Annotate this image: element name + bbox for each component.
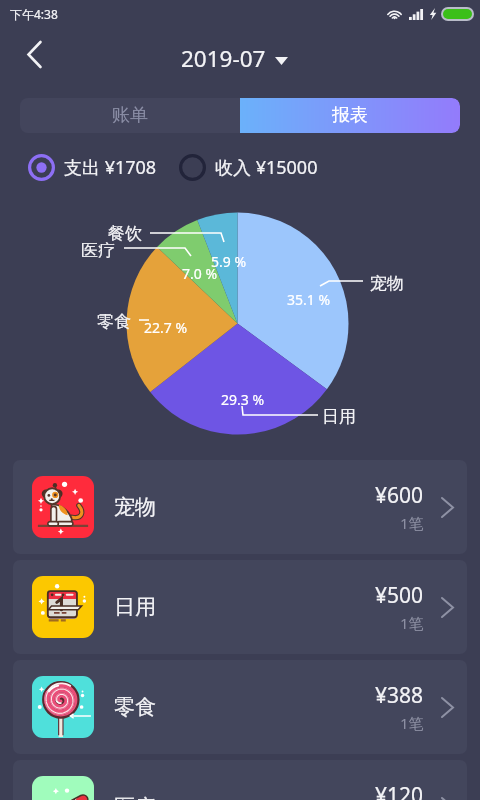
button[interactable]: 宠物 [13,460,467,554]
staticText: 支出 ¥1708 [64,155,157,180]
staticText: ¥600 [375,481,424,510]
button[interactable]: 支出 ¥1708 [28,154,157,181]
staticText: 29.3 % [221,390,265,409]
staticText: 医疗 [81,240,115,261]
staticText: 22.7 % [144,318,188,337]
button[interactable]: Back [10,30,58,78]
staticText: 2019-07 [181,43,266,74]
staticText: 7.0 % [182,264,218,283]
staticText: 1笔 [400,613,424,633]
staticText: 宠物 [114,494,156,520]
staticText: 宠物 [370,273,404,294]
staticText: 1笔 [400,713,424,733]
button[interactable]: 报表 [240,98,460,133]
staticText: 下午4:38 [10,6,58,22]
staticText: 日用 [114,594,156,620]
staticText: 零食 [97,311,131,332]
staticText: 零食 [114,694,156,720]
staticText: 账单 [112,104,148,127]
staticText: 5.9 % [211,252,247,271]
staticText: 报表 [332,104,368,127]
button[interactable]: 账单 [20,98,240,133]
staticText: ¥388 [375,681,424,710]
staticText: 35.1 % [287,290,331,309]
button[interactable]: 2019-07 [181,43,288,74]
staticText: 医疗 [114,794,156,800]
staticText: ¥120 [375,781,424,800]
staticText: 餐饮 [108,223,142,244]
button[interactable]: 医疗 [13,760,467,800]
staticText: 日用 [322,406,356,427]
staticText: ¥500 [375,581,424,610]
staticText: 收入 ¥15000 [215,155,318,180]
button[interactable]: 收入 ¥15000 [179,154,318,181]
button[interactable]: 日用 [13,560,467,654]
button[interactable]: 零食 [13,660,467,754]
staticText: 1笔 [400,513,424,533]
